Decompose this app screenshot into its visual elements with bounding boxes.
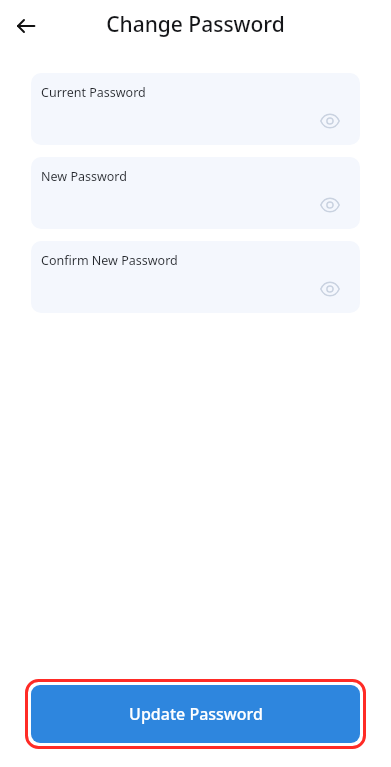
button[interactable]: New Password [31,157,360,229]
button[interactable]: Show password [314,273,346,305]
staticText: Update Password [129,703,263,725]
button[interactable]: Show password [314,105,346,137]
button[interactable]: Confirm New Password [31,241,360,313]
button[interactable]: Update Password [31,685,360,743]
staticText: New Password [41,168,127,185]
button[interactable]: Show password [314,189,346,221]
button[interactable]: Current Password [31,73,360,145]
staticText: Current Password [41,84,146,101]
staticText: Change Password [106,10,285,39]
button[interactable]: Back [8,8,44,44]
staticText: Confirm New Password [41,252,178,269]
